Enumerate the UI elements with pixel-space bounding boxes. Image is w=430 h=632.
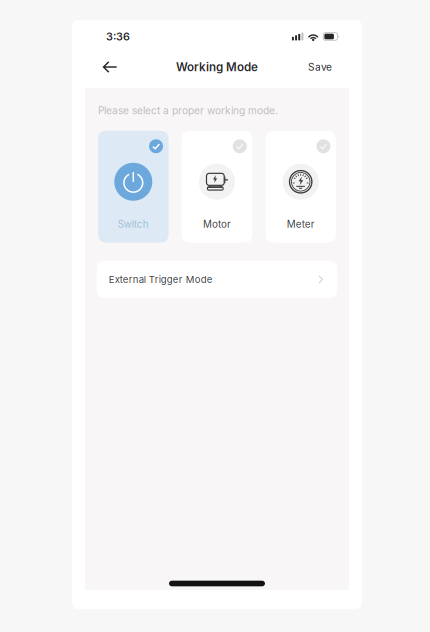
staticText: Motor xyxy=(203,218,231,230)
staticText: External Trigger Mode xyxy=(109,274,213,285)
staticText: Switch xyxy=(118,218,149,230)
staticText: 3:36 xyxy=(106,30,130,43)
button[interactable]: Meter xyxy=(265,131,336,243)
button[interactable]: Back xyxy=(97,54,123,80)
staticText: Please select a proper working mode. xyxy=(98,104,278,117)
staticText: Meter xyxy=(287,218,315,230)
button[interactable]: Save xyxy=(308,54,332,80)
button[interactable]: Switch xyxy=(98,131,168,243)
button[interactable]: External Trigger Mode xyxy=(97,261,337,298)
staticText: Save xyxy=(308,61,332,73)
staticText: Working Mode xyxy=(176,60,258,74)
button[interactable]: Motor xyxy=(182,131,252,243)
